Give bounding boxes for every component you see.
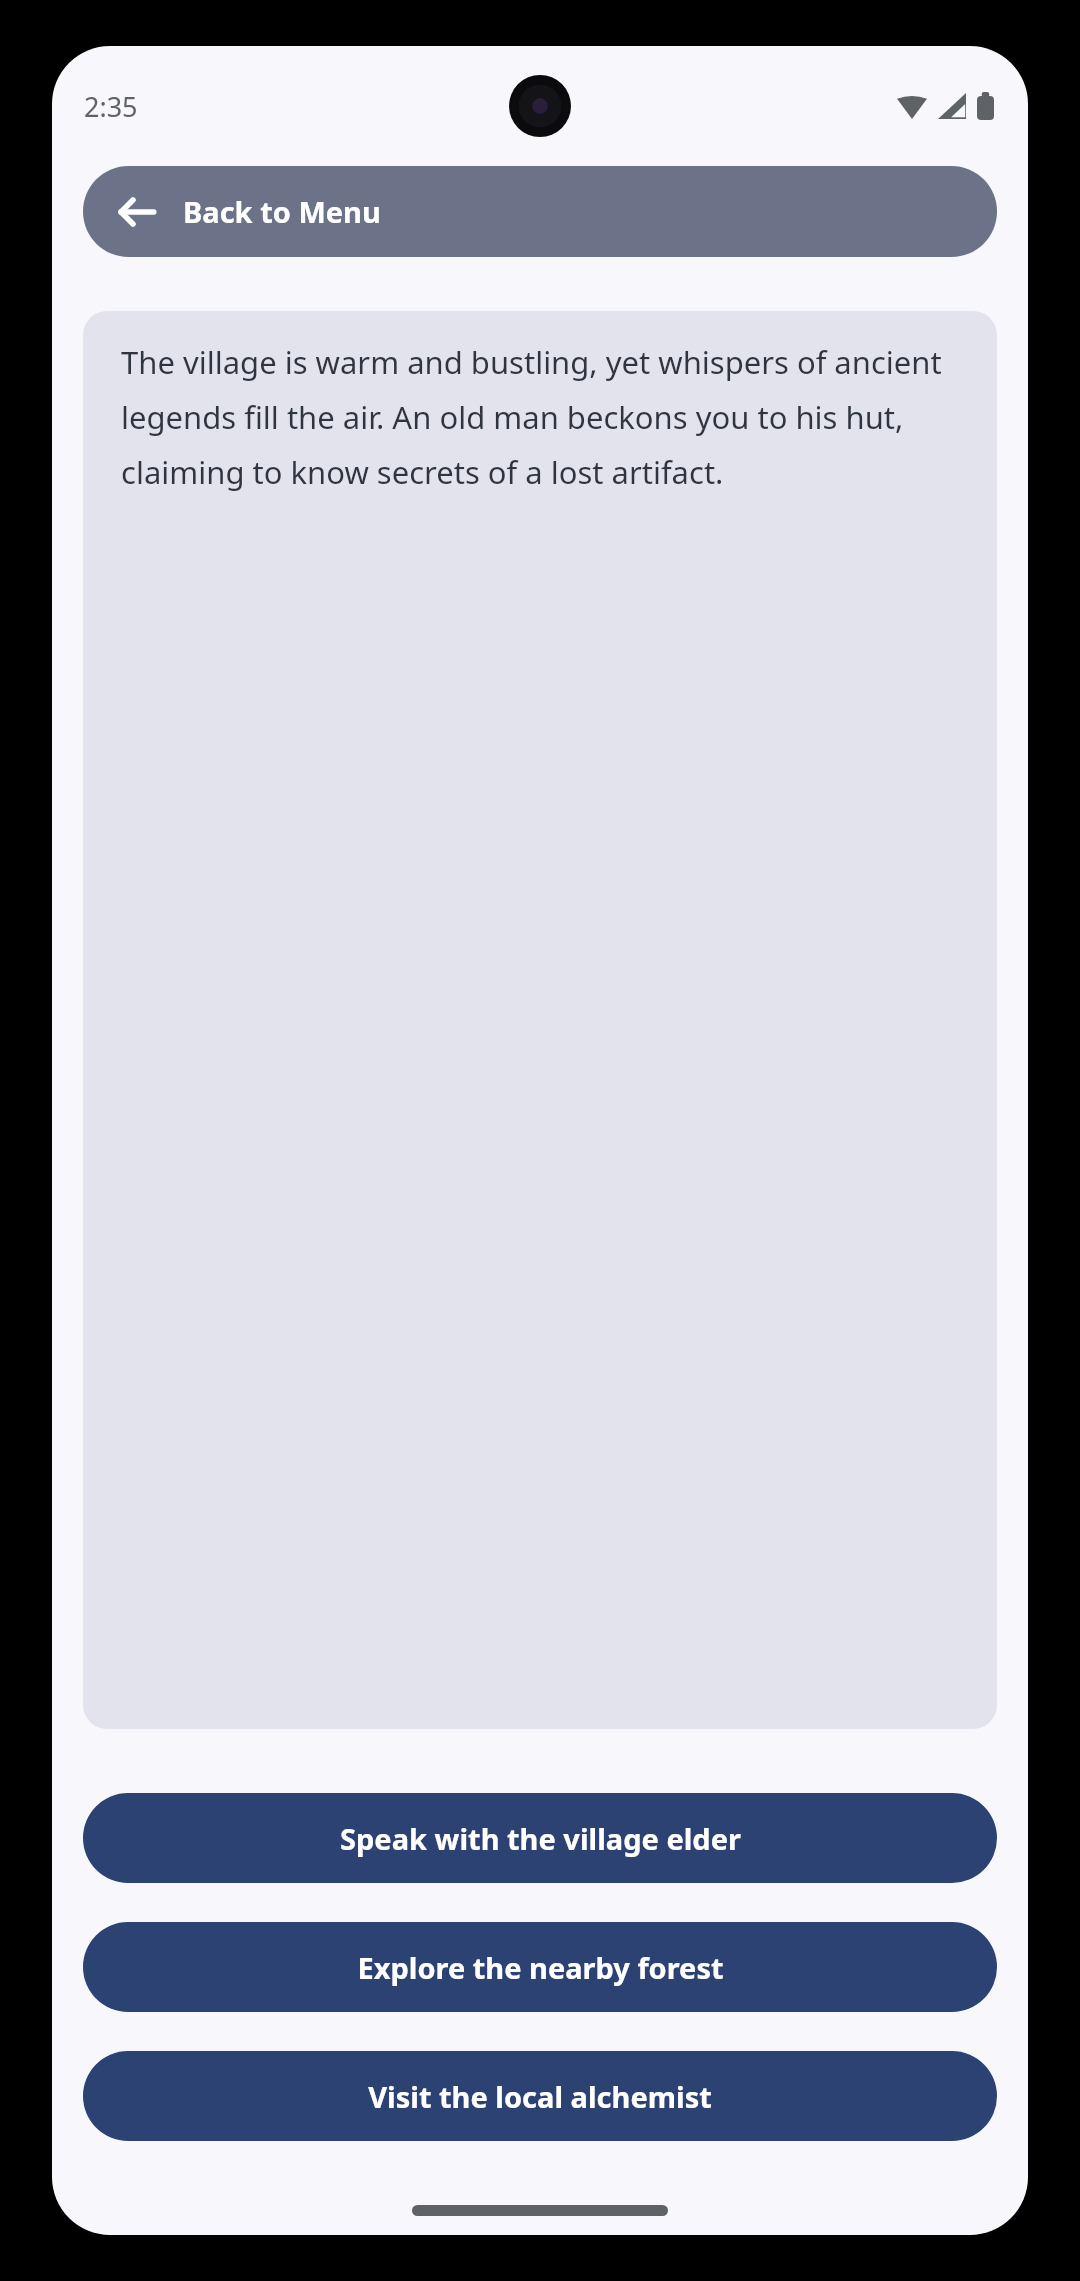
button[interactable]: Speak with the village elder xyxy=(83,1793,997,1883)
staticText: 2:35 xyxy=(84,88,138,125)
staticText: Back to Menu xyxy=(183,192,381,231)
staticText: The village is warm and bustling, yet wh… xyxy=(121,341,967,493)
button[interactable]: Back xyxy=(83,166,997,257)
staticText: Speak with the village elder xyxy=(340,1819,741,1858)
button[interactable]: Explore the nearby forest xyxy=(83,1922,997,2012)
staticText: Visit the local alchemist xyxy=(368,2077,712,2116)
other: Back xyxy=(117,192,157,232)
staticText: Explore the nearby forest xyxy=(357,1948,724,1987)
button[interactable]: Visit the local alchemist xyxy=(83,2051,997,2141)
